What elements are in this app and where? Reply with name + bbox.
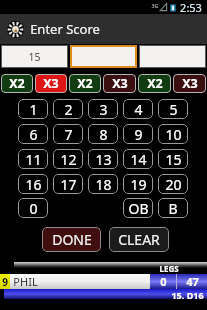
- button[interactable]: 16: [18, 174, 48, 194]
- staticText: DONE: [52, 230, 92, 249]
- staticText: X3: [112, 75, 128, 92]
- staticText: 0: [160, 274, 167, 289]
- button[interactable]: 9: [123, 124, 153, 144]
- staticText: 3G: [151, 2, 159, 9]
- staticText: X2: [77, 75, 93, 92]
- staticText: 1: [29, 100, 38, 119]
- button[interactable]: 4: [123, 99, 153, 119]
- staticText: 0: [29, 199, 38, 218]
- staticText: X2: [9, 75, 25, 92]
- button[interactable]: 12: [53, 149, 83, 169]
- button[interactable]: [139, 45, 206, 68]
- button[interactable]: 13: [88, 149, 118, 169]
- button[interactable]: X3: [173, 74, 206, 93]
- staticText: PHIL: [13, 274, 38, 289]
- staticText: 17: [60, 175, 77, 194]
- staticText: CLEAR: [118, 230, 160, 249]
- staticText: 15: [28, 50, 41, 64]
- button[interactable]: DONE: [42, 227, 101, 252]
- staticText: 47: [186, 274, 199, 289]
- button[interactable]: 11: [18, 149, 48, 169]
- staticText: 8: [99, 125, 108, 144]
- staticText: 19: [130, 175, 147, 194]
- staticText: 16: [25, 175, 42, 194]
- button[interactable]: OB: [123, 198, 153, 218]
- staticText: Enter Score: [30, 20, 100, 38]
- staticText: 15, D16: [171, 289, 204, 299]
- button[interactable]: 0: [150, 274, 176, 289]
- staticText: 9: [2, 275, 8, 289]
- button[interactable]: 0: [18, 198, 48, 218]
- staticText: 2: [64, 100, 73, 119]
- staticText: 11: [25, 150, 42, 169]
- button[interactable]: X2: [138, 74, 171, 93]
- button[interactable]: 3: [88, 99, 118, 119]
- staticText: 2:53: [180, 0, 202, 14]
- staticText: X3: [43, 75, 59, 92]
- staticText: 3: [99, 100, 108, 119]
- staticText: 14: [130, 150, 147, 169]
- button[interactable]: 8: [88, 124, 118, 144]
- button[interactable]: 7: [53, 124, 83, 144]
- button[interactable]: 14: [123, 149, 153, 169]
- staticText: 15: [165, 150, 182, 169]
- staticText: 9: [134, 125, 143, 144]
- staticText: 18: [95, 175, 112, 194]
- button[interactable]: 20: [158, 174, 188, 194]
- button[interactable]: 15: [1, 45, 68, 68]
- staticText: 13: [95, 150, 112, 169]
- staticText: LEGS: [159, 263, 179, 272]
- staticText: OB: [128, 199, 149, 218]
- button[interactable]: X2: [1, 74, 33, 93]
- button[interactable]: X3: [103, 74, 136, 93]
- button[interactable]: B: [158, 198, 188, 218]
- button[interactable]: X3: [35, 74, 67, 93]
- button[interactable]: 10: [158, 124, 188, 144]
- button[interactable]: X2: [69, 74, 101, 93]
- staticText: 6: [29, 125, 38, 144]
- button[interactable]: 47: [177, 274, 207, 289]
- staticText: 4: [134, 100, 143, 119]
- button[interactable]: 1: [18, 99, 48, 119]
- button[interactable]: 17: [53, 174, 83, 194]
- button[interactable]: 6: [18, 124, 48, 144]
- button[interactable]: 18: [88, 174, 118, 194]
- button[interactable]: 2: [53, 99, 83, 119]
- button[interactable]: 5: [158, 99, 188, 119]
- button[interactable]: 19: [123, 174, 153, 194]
- button[interactable]: [70, 45, 137, 68]
- staticText: 12: [60, 150, 77, 169]
- staticText: X3: [182, 75, 198, 92]
- staticText: 20: [165, 175, 182, 194]
- staticText: 10: [165, 125, 182, 144]
- button[interactable]: 15: [158, 149, 188, 169]
- staticText: B: [168, 199, 178, 218]
- staticText: 7: [64, 125, 73, 144]
- staticText: 5: [169, 100, 178, 119]
- staticText: X2: [147, 75, 163, 92]
- button[interactable]: CLEAR: [109, 227, 169, 252]
